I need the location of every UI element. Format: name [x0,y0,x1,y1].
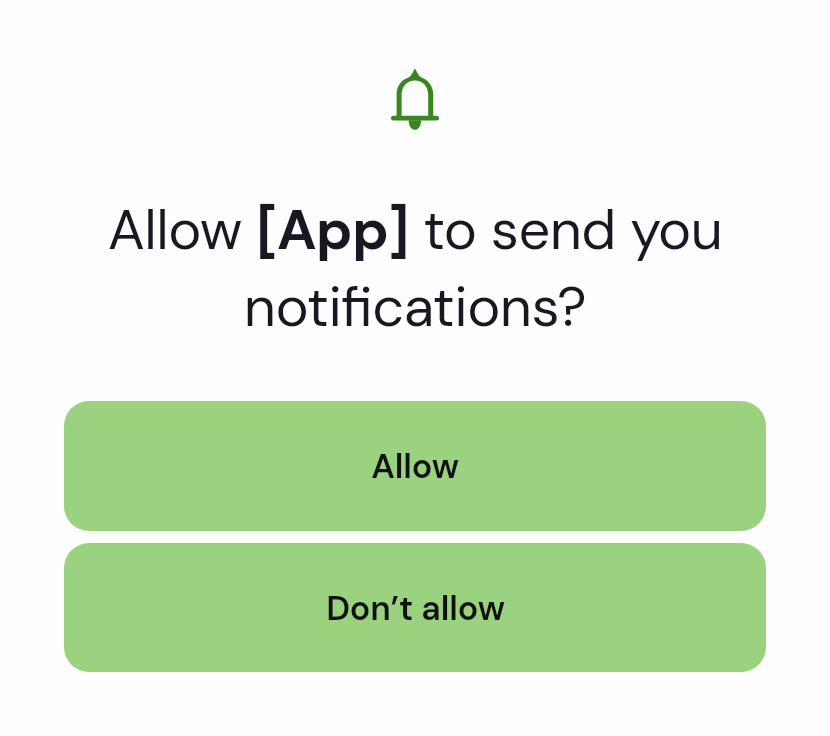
staticText: Allow [App] to send you notifications? [90,193,740,343]
staticText: Allow [371,444,459,488]
staticText: Don’t allow [326,586,505,630]
button[interactable]: Don’t allow [64,543,766,672]
button[interactable]: Allow [64,401,766,531]
other: Notifications [391,70,439,134]
